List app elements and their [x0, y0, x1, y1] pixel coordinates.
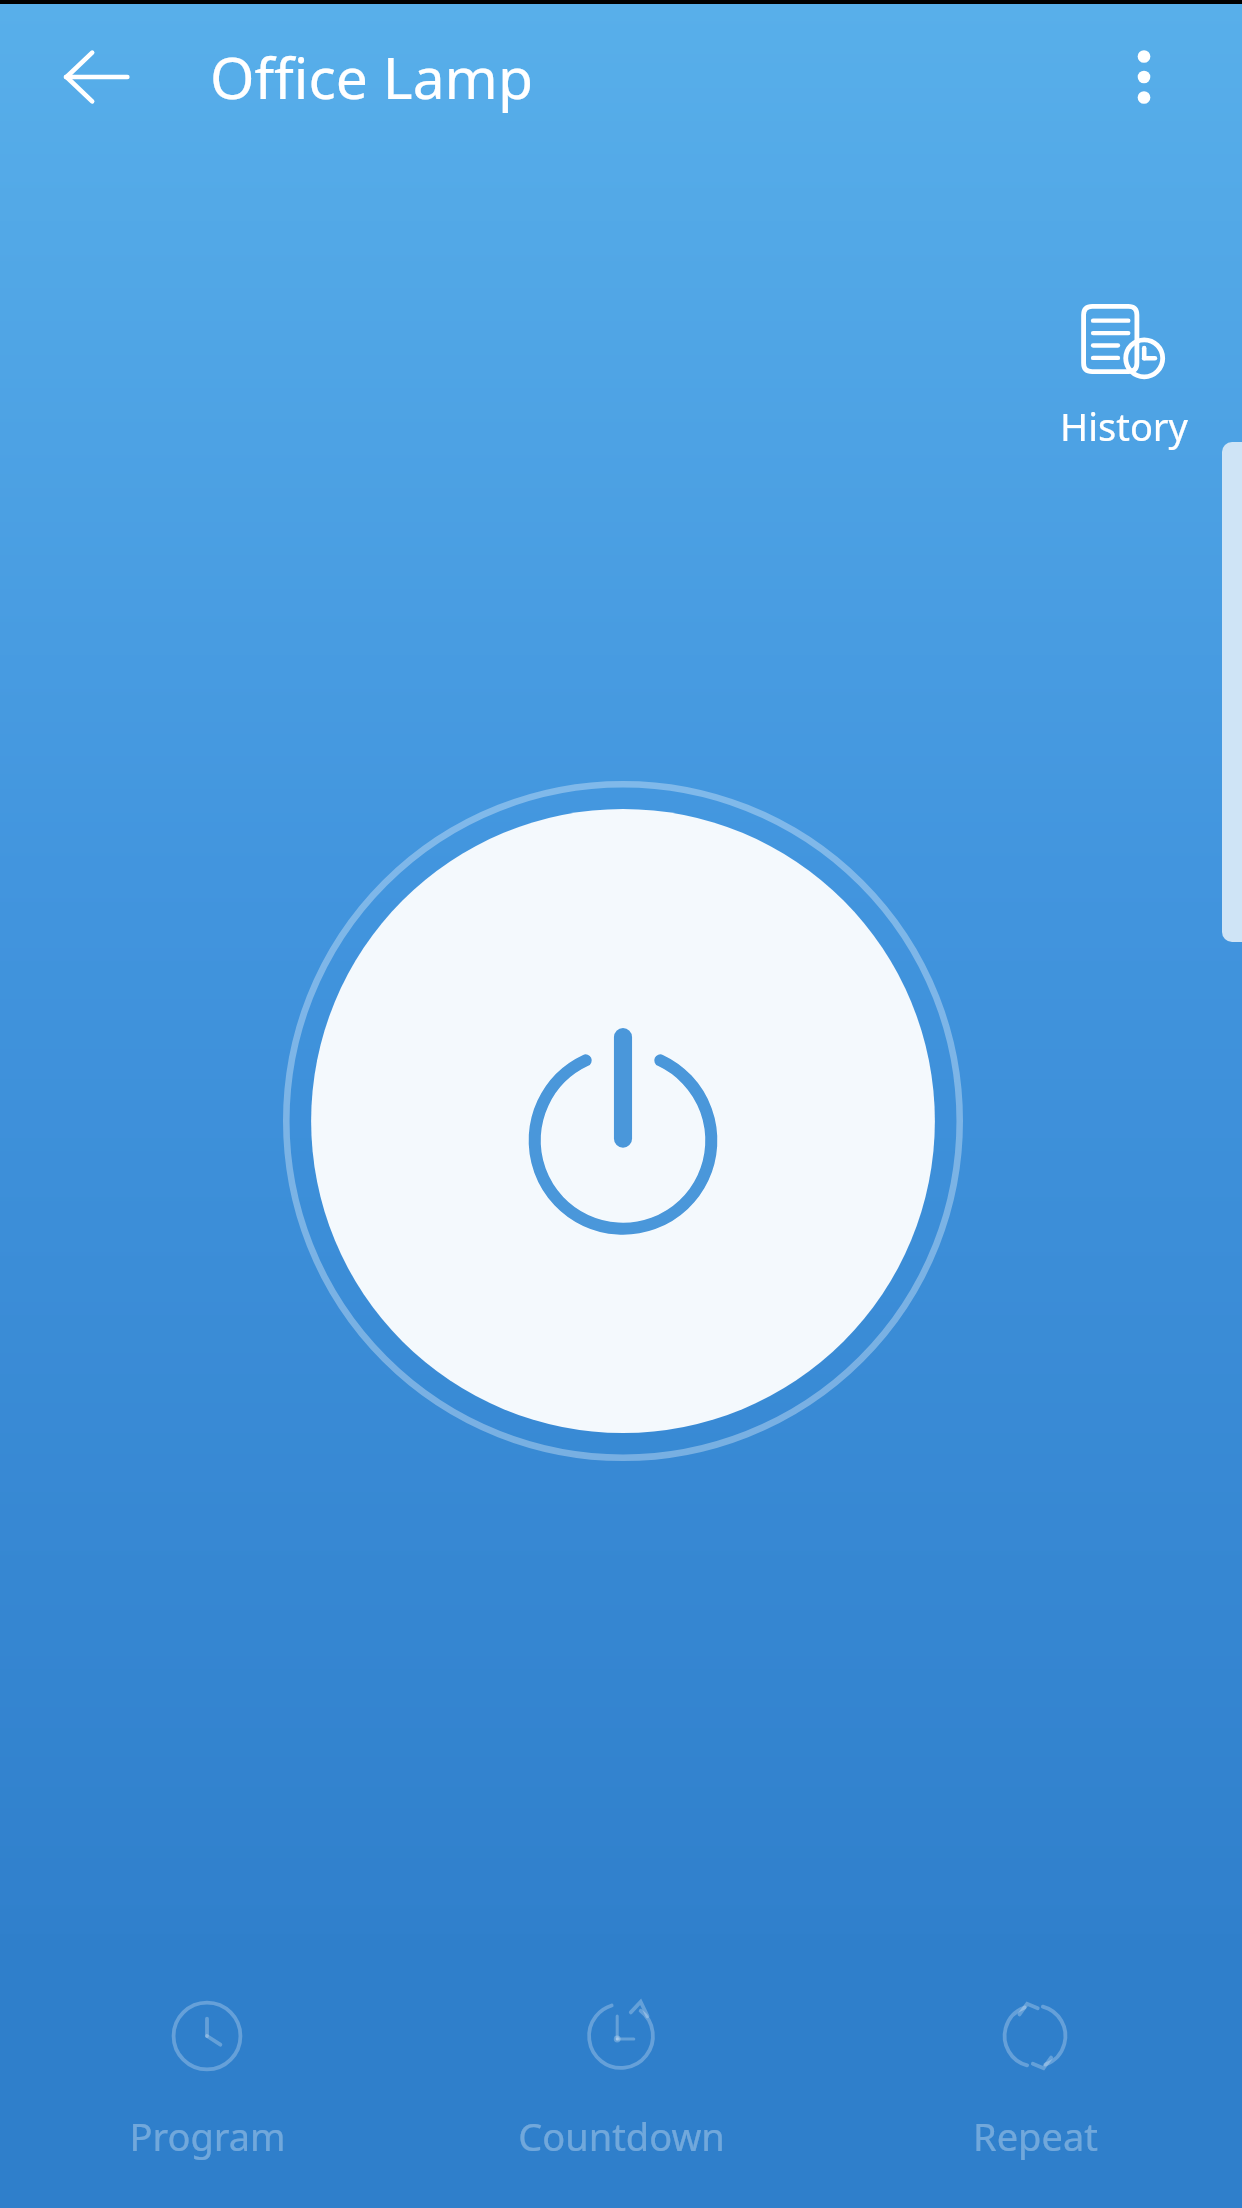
- staticText: Office Lamp: [210, 38, 533, 116]
- button[interactable]: Power toggle: [278, 776, 968, 1466]
- staticText: Countdown: [518, 2110, 725, 2162]
- button[interactable]: Repeat: [828, 1934, 1242, 2208]
- staticText: Repeat: [973, 2110, 1098, 2162]
- button[interactable]: Program: [0, 1934, 414, 2208]
- staticText: Program: [129, 2110, 286, 2162]
- button[interactable]: Countdown: [414, 1934, 828, 2208]
- button[interactable]: History: [1050, 296, 1198, 458]
- button[interactable]: Back: [38, 19, 154, 135]
- button[interactable]: More options: [1088, 21, 1200, 133]
- button[interactable]: Drawer handle: [1222, 442, 1242, 942]
- staticText: History: [1060, 400, 1188, 452]
